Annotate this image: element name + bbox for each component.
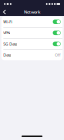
staticText: Wi-Fi <box>3 19 12 24</box>
staticText: Network <box>24 9 40 15</box>
button[interactable]: Back <box>2 8 8 15</box>
staticText: Data <box>3 52 11 58</box>
button[interactable]: Wi-Fi <box>1 16 62 27</box>
staticText: Off <box>55 52 61 58</box>
button[interactable]: Data <box>1 50 62 60</box>
staticText: VPN <box>3 30 10 35</box>
button[interactable]: 5G Data <box>1 39 62 49</box>
button[interactable]: VPN <box>1 28 62 38</box>
staticText: 5G Data <box>3 41 17 46</box>
